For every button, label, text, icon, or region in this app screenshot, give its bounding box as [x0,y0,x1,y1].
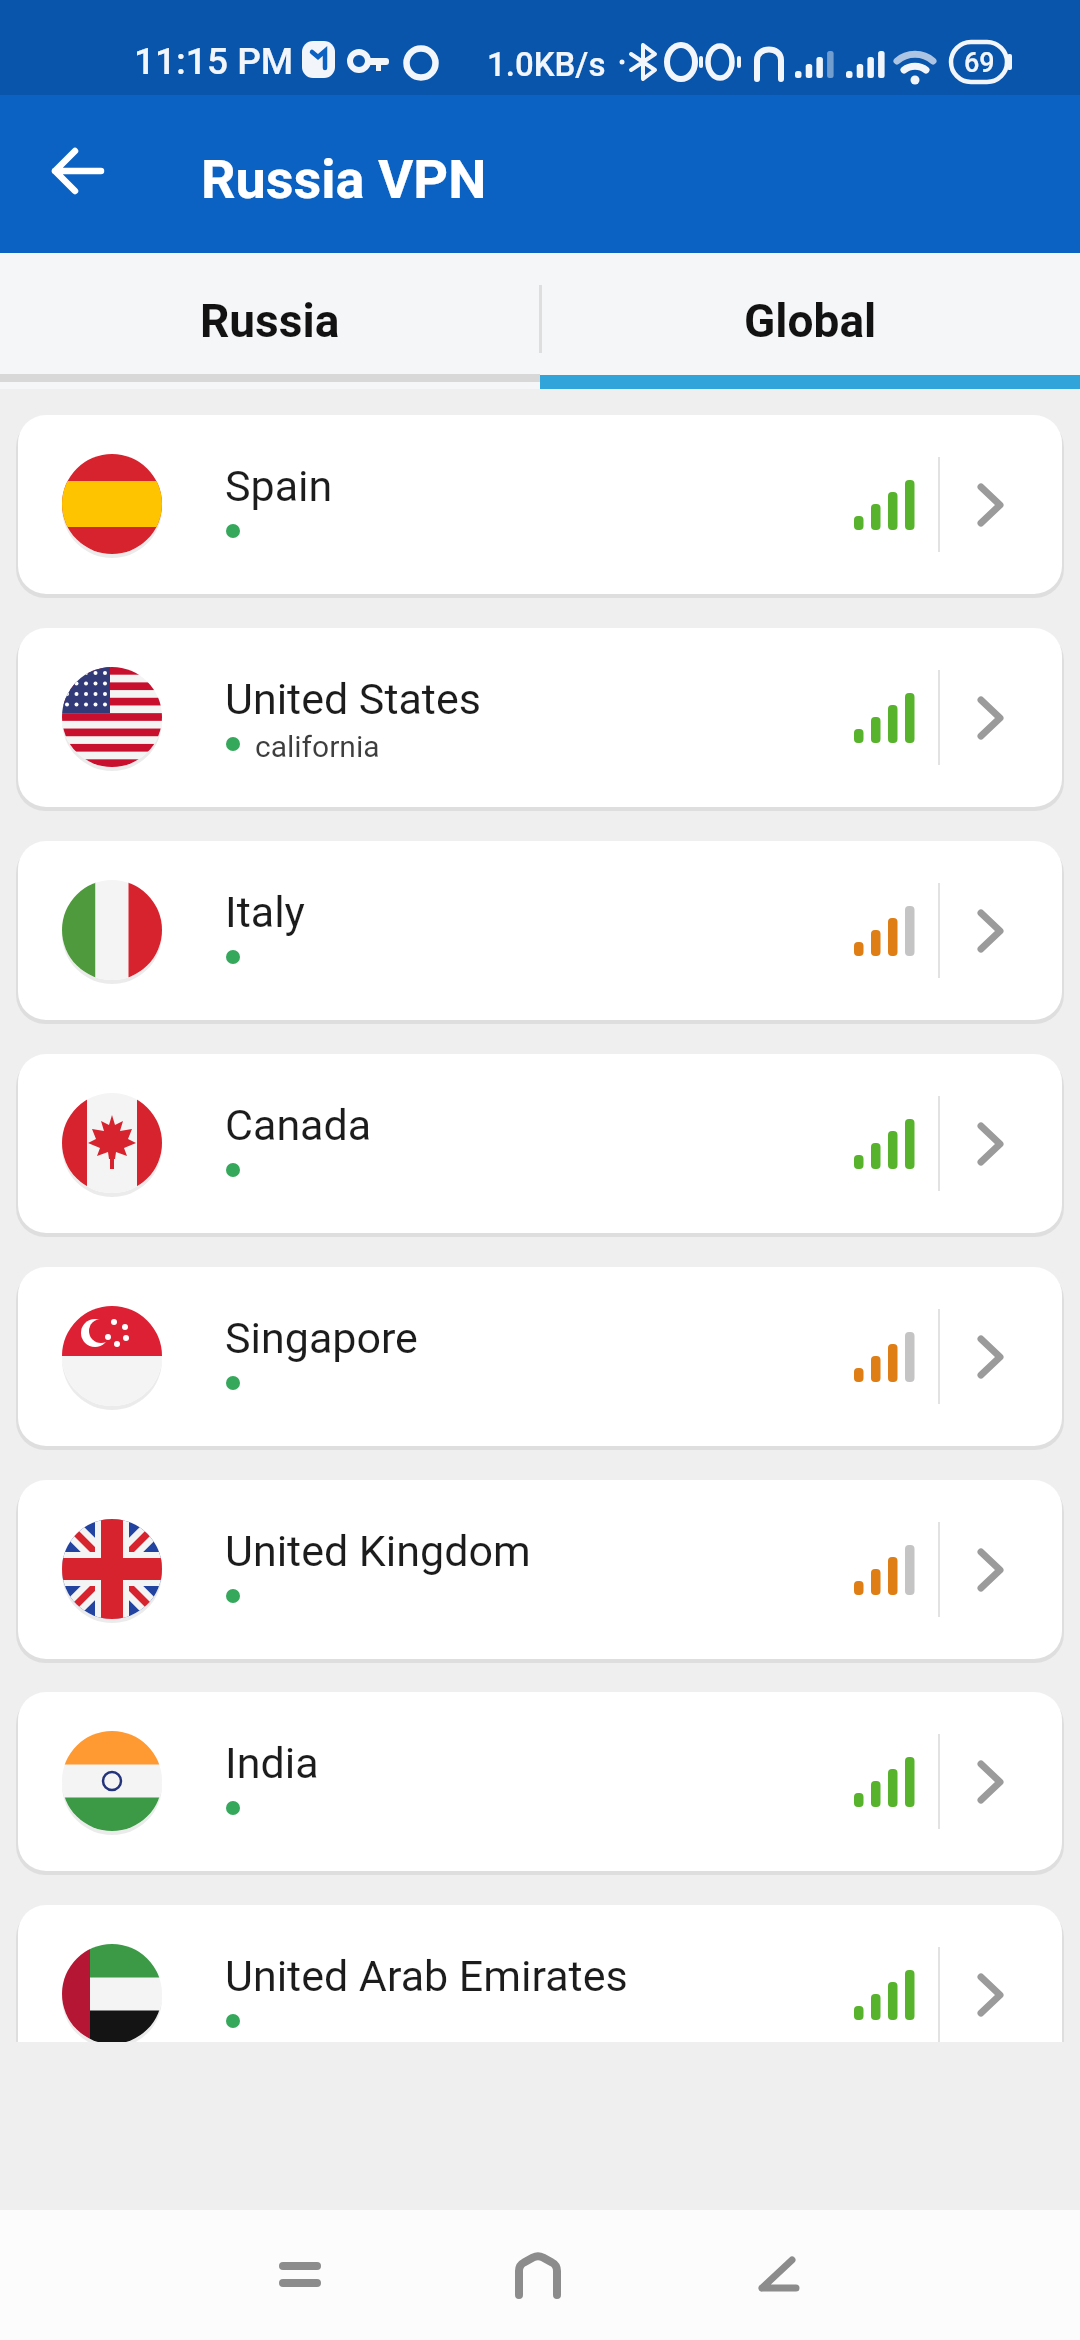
button[interactable]: United Kingdom [18,1480,1062,1659]
button[interactable] [488,2225,588,2325]
button[interactable] [728,2225,828,2325]
staticText: Russia [200,294,340,348]
button[interactable]: Spain [18,415,1062,594]
button[interactable]: Global [540,253,1080,389]
staticText: 11:15 PM [134,40,294,83]
button[interactable]: United Arab Emirates [18,1905,1062,2042]
staticText: United States [225,674,481,724]
staticText: california [255,729,380,764]
button[interactable]: Canada [18,1054,1062,1233]
staticText: Russia VPN [201,148,487,211]
button[interactable] [40,135,116,211]
staticText: Canada [225,1100,372,1150]
staticText: Spain [225,461,333,511]
button[interactable]: India [18,1692,1062,1871]
staticText: 1.0KB/s [487,45,606,84]
staticText: 69 [964,47,995,79]
button[interactable]: Russia [0,253,540,389]
staticText: Singapore [225,1313,418,1363]
button[interactable]: Singapore [18,1267,1062,1446]
button[interactable]: Italy [18,841,1062,1020]
staticText: United Kingdom [225,1526,531,1576]
staticText: United Arab Emirates [225,1951,628,2001]
button[interactable]: United States [18,628,1062,807]
staticText: India [225,1738,319,1788]
staticText: Global [744,294,877,348]
staticText: Italy [225,887,305,937]
button[interactable] [250,2225,350,2325]
